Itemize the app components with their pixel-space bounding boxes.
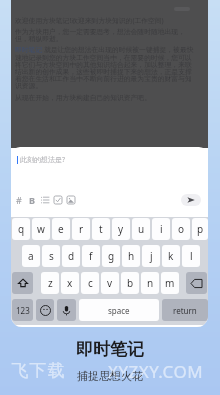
button[interactable]: u [132,218,150,240]
staticText: i [160,222,163,236]
button[interactable]: Bold [25,193,38,207]
button[interactable]: return [162,299,208,321]
button[interactable]: Emoji [36,299,54,321]
staticText: n [147,276,154,290]
staticText: m [165,276,175,290]
staticText: 飞下载 [11,360,65,381]
button[interactable]: s [42,245,60,267]
staticText: j [150,249,153,263]
staticText: x [67,276,73,290]
button[interactable]: n [141,272,159,294]
staticText: c [88,276,93,290]
button[interactable]: q [12,218,30,240]
staticText: 即时笔记 [76,339,144,360]
button[interactable]: p [192,218,208,240]
button[interactable]: Backspace [186,272,207,294]
staticText: 即时笔记 就是让您的想法在出现的时候被一键捕捉，被最快速地记录到您的方块工作空间… [15,45,198,90]
button[interactable]: 123 [12,299,33,321]
button[interactable]: Send [181,194,201,206]
button[interactable]: z [41,272,59,294]
button[interactable]: x [61,272,79,294]
staticText: t [99,222,103,236]
button[interactable]: Dictation [57,299,76,321]
staticText: v [107,276,113,290]
button[interactable]: v [101,272,119,294]
staticText: h [128,249,135,263]
button[interactable]: k [162,245,180,267]
staticText: 作为方块用户，您一定需要思考，想法会随时随地出现，但，稍纵即逝。 [15,27,198,43]
button[interactable]: o [172,218,190,240]
staticText: return [173,305,197,316]
staticText: o [178,222,185,236]
staticText: B [29,194,35,206]
staticText: 欢迎使用方块笔记!欢迎来到方块知识的(工作空间) [15,16,164,25]
button[interactable]: e [52,218,70,240]
button[interactable]: t [92,218,110,240]
staticText: l [190,249,193,263]
staticText: u [138,222,145,236]
staticText: 捕捉思想火花 [77,369,143,383]
button[interactable]: a [22,245,40,267]
staticText: f [89,249,93,263]
staticText: b [127,276,134,290]
button[interactable]: Bullet list [38,193,51,207]
staticText: y [118,222,124,236]
button[interactable]: m [161,272,179,294]
button[interactable]: y [112,218,130,240]
button[interactable]: w [32,218,50,240]
button[interactable]: space [79,299,159,321]
staticText: 从现在开始，用方块构建自己的知识资产吧。 [15,93,151,102]
button[interactable]: d [62,245,80,267]
button[interactable]: Shift [12,272,33,294]
staticText: k [168,249,174,263]
staticText: r [79,222,84,236]
staticText: g [108,249,115,263]
button[interactable]: b [121,272,139,294]
staticText: w [37,222,45,236]
button[interactable]: l [182,245,200,267]
button[interactable]: r [72,218,90,240]
staticText: space [108,305,130,316]
staticText: XYZXY.COM [108,360,204,383]
button[interactable]: c [81,272,99,294]
staticText: 此刻的想法是? [20,155,66,165]
button[interactable]: Insert image [64,193,77,207]
button[interactable]: Checklist [51,193,64,207]
staticText: s [49,249,54,263]
button[interactable]: f [82,245,100,267]
staticText: 123 [16,305,30,316]
button[interactable]: i [152,218,170,240]
button[interactable]: Tag [12,193,25,207]
staticText: d [68,249,75,263]
staticText: # [16,194,22,206]
staticText: e [58,222,64,236]
button[interactable]: g [102,245,120,267]
button[interactable]: j [142,245,160,267]
staticText: p [197,222,204,236]
staticText: z [48,276,53,290]
button[interactable]: h [122,245,140,267]
staticText: q [18,222,25,236]
staticText: a [28,249,34,263]
